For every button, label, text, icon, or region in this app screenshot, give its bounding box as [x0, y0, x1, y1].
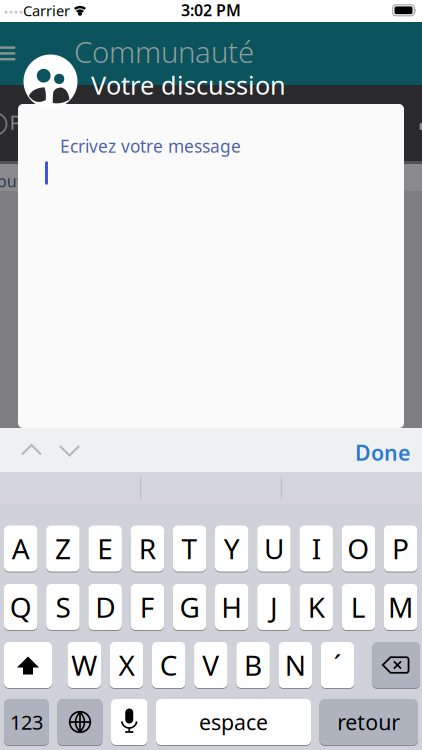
- button[interactable]: G: [173, 584, 206, 630]
- staticText: A: [12, 530, 30, 567]
- button[interactable]: ´: [321, 642, 354, 688]
- staticText: retour: [337, 708, 400, 736]
- staticText: X: [118, 646, 134, 684]
- staticText: N: [285, 646, 306, 684]
- button[interactable]: B: [236, 642, 270, 688]
- button[interactable]: Ecrivez votre message: [18, 119, 378, 209]
- button[interactable]: M: [384, 584, 417, 630]
- button[interactable]: Delete: [372, 642, 420, 688]
- staticText: 123: [10, 709, 43, 735]
- staticText: J: [270, 588, 278, 626]
- staticText: W: [71, 646, 97, 684]
- staticText: Carrier: [23, 1, 70, 20]
- staticText: espace: [199, 708, 268, 736]
- button[interactable]: I: [299, 525, 333, 571]
- button[interactable]: Numbers: [4, 699, 49, 745]
- staticText: B: [244, 646, 262, 684]
- button[interactable]: A: [4, 525, 37, 571]
- button[interactable]: U: [257, 525, 291, 571]
- staticText: F: [140, 588, 155, 626]
- staticText: P: [392, 530, 409, 567]
- staticText: Y: [224, 530, 240, 567]
- button[interactable]: J: [257, 584, 291, 630]
- staticText: O: [347, 530, 369, 567]
- staticText: R: [139, 530, 156, 567]
- button[interactable]: S: [46, 584, 80, 630]
- button[interactable]: Next field: [54, 441, 85, 460]
- button[interactable]: X: [110, 642, 143, 688]
- staticText: Q: [10, 588, 32, 626]
- button[interactable]: R: [131, 525, 164, 571]
- staticText: V: [202, 646, 219, 684]
- button[interactable]: Y: [215, 525, 248, 571]
- button[interactable]: Dictation: [111, 699, 147, 745]
- button[interactable]: D: [88, 584, 122, 630]
- staticText: G: [180, 588, 200, 626]
- button[interactable]: W: [67, 642, 101, 688]
- button[interactable]: Done: [352, 437, 412, 467]
- button[interactable]: espace: [156, 699, 311, 745]
- staticText: C: [160, 646, 178, 684]
- staticText: I: [312, 530, 321, 567]
- staticText: D: [95, 588, 115, 626]
- staticText: Z: [55, 530, 71, 567]
- staticText: K: [308, 588, 325, 626]
- button[interactable]: Q: [4, 584, 37, 630]
- staticText: E: [97, 530, 113, 567]
- staticText: M: [388, 588, 413, 626]
- staticText: U: [264, 530, 284, 567]
- button[interactable]: T: [173, 525, 206, 571]
- button[interactable]: Z: [46, 525, 80, 571]
- staticText: 3:02 PM: [181, 0, 241, 21]
- button[interactable]: K: [299, 584, 333, 630]
- button[interactable]: retour: [319, 699, 418, 745]
- button[interactable]: C: [152, 642, 185, 688]
- button[interactable]: H: [215, 584, 248, 630]
- button[interactable]: Menu: [0, 46, 15, 60]
- staticText: L: [351, 588, 366, 626]
- staticText: Ecrivez votre message: [60, 134, 241, 157]
- button[interactable]: F: [131, 584, 164, 630]
- button[interactable]: N: [278, 642, 312, 688]
- staticText: ´: [333, 646, 341, 684]
- button[interactable]: V: [194, 642, 228, 688]
- button[interactable]: P: [384, 525, 417, 571]
- staticText: P: [9, 109, 21, 135]
- staticText: but: [0, 170, 23, 192]
- staticText: Communauté: [74, 32, 254, 71]
- staticText: T: [182, 530, 198, 567]
- staticText: Done: [355, 438, 410, 467]
- button[interactable]: Previous field: [16, 440, 47, 459]
- button[interactable]: E: [88, 525, 122, 571]
- button[interactable]: O: [342, 525, 375, 571]
- staticText: H: [221, 588, 242, 626]
- staticText: Votre discussion: [91, 68, 286, 102]
- button[interactable]: Next keyboard: [57, 699, 102, 745]
- button[interactable]: Shift: [4, 642, 52, 688]
- staticText: S: [55, 588, 70, 626]
- button[interactable]: L: [342, 584, 375, 630]
